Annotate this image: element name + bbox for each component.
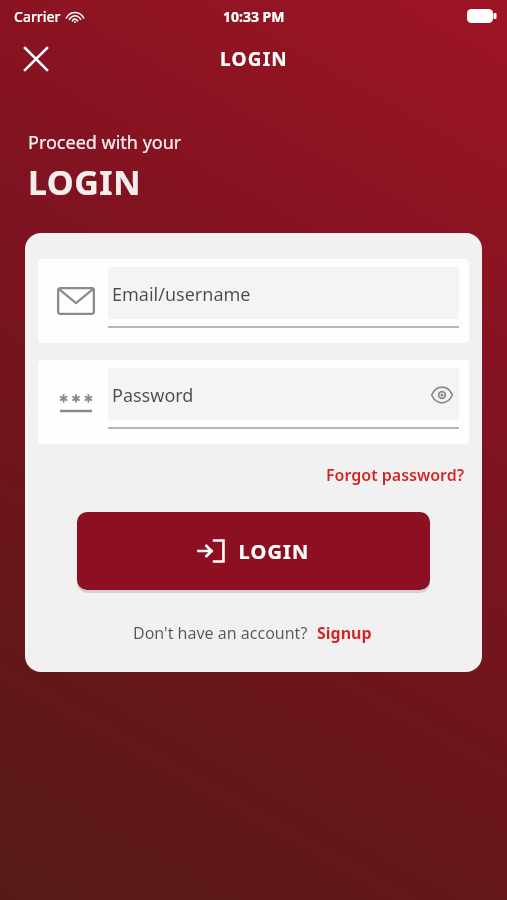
staticText: Signup: [317, 622, 372, 644]
staticText: Forgot password?: [326, 464, 465, 486]
staticText: Proceed with your: [28, 130, 182, 155]
button[interactable]: LOGIN: [77, 512, 430, 590]
staticText: LOGIN: [28, 159, 142, 205]
button[interactable]: Close: [12, 35, 60, 83]
button[interactable]: Password field: [38, 360, 469, 444]
staticText: Carrier: [14, 7, 61, 26]
staticText: Password: [112, 383, 194, 408]
staticText: Email/username: [112, 282, 251, 307]
staticText: LOGIN: [238, 538, 310, 565]
button[interactable]: Email or username field: [38, 259, 469, 343]
button[interactable]: Show password: [425, 378, 459, 412]
button[interactable]: Forgot password?: [322, 460, 469, 490]
staticText: 10:33 PM: [223, 7, 285, 26]
staticText: LOGIN: [220, 46, 288, 72]
staticText: Don't have an account?: [133, 622, 308, 644]
button[interactable]: Signup: [315, 620, 374, 646]
